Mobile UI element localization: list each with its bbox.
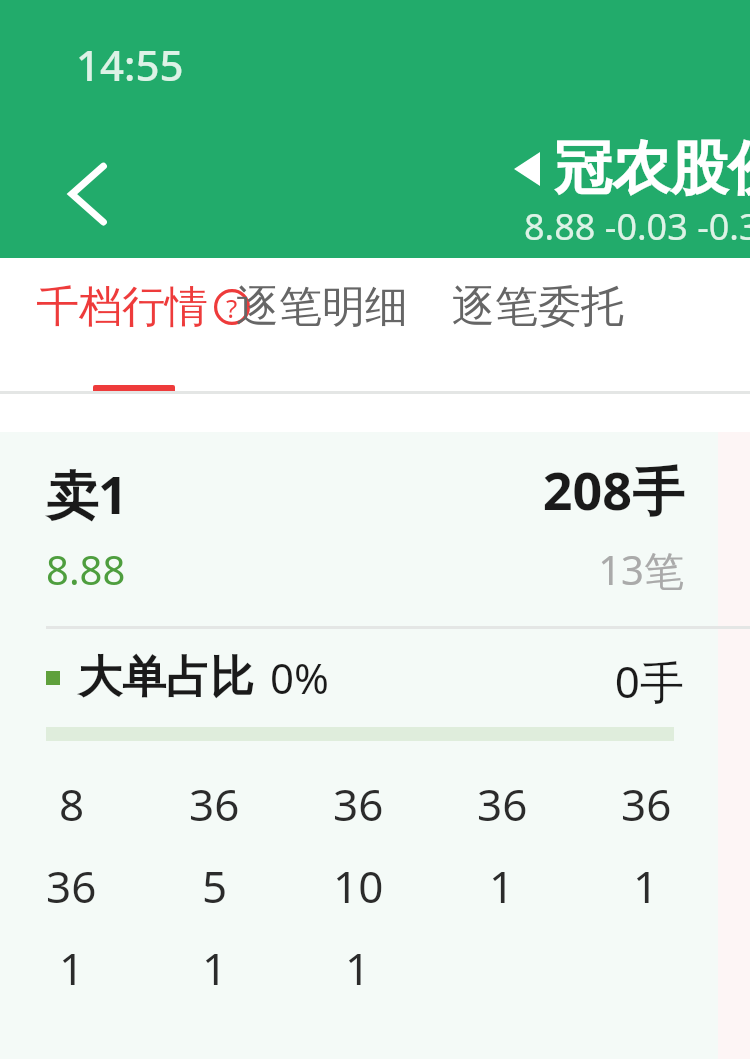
staticText: 36 <box>333 774 384 834</box>
staticText: 0% <box>270 649 329 706</box>
staticText: 36 <box>189 774 240 834</box>
button[interactable]: 逐笔明细 <box>214 258 430 394</box>
staticText: 千档行情 <box>36 280 208 334</box>
staticText: 1 <box>633 856 659 916</box>
button[interactable]: 冠农股份 <box>514 132 750 205</box>
staticText: 208手 <box>0 454 684 525</box>
staticText: 36 <box>477 774 528 834</box>
staticText: 1 <box>489 856 515 916</box>
staticText: 10 <box>333 856 384 916</box>
staticText: 冠农股份 <box>554 132 750 205</box>
button[interactable]: 逐笔委托 <box>430 258 646 394</box>
staticText: 8 <box>59 774 85 834</box>
staticText: 13笔 <box>0 542 684 597</box>
button[interactable]: 卖1 <box>0 432 750 626</box>
staticText: 1 <box>345 938 371 998</box>
staticText: 逐笔委托 <box>452 280 624 334</box>
staticText: 0手 <box>0 651 684 711</box>
staticText: 5 <box>202 856 228 916</box>
staticText: 逐笔明细 <box>236 280 408 334</box>
button[interactable]: Back <box>44 150 134 240</box>
staticText: 8.88 <box>46 542 126 596</box>
staticText: 14:55 <box>76 36 184 93</box>
staticText: 1 <box>59 938 85 998</box>
staticText: 1 <box>202 938 228 998</box>
staticText: 大单占比 <box>78 650 254 705</box>
staticText: ? <box>226 290 238 325</box>
staticText: 36 <box>621 774 672 834</box>
button[interactable]: 千档行情 <box>0 258 214 394</box>
staticText: 36 <box>46 856 97 916</box>
staticText: 卖1 <box>46 458 128 529</box>
staticText: 8.88 -0.03 -0.34% <box>524 202 750 251</box>
button[interactable]: 大单占比 <box>0 629 750 727</box>
